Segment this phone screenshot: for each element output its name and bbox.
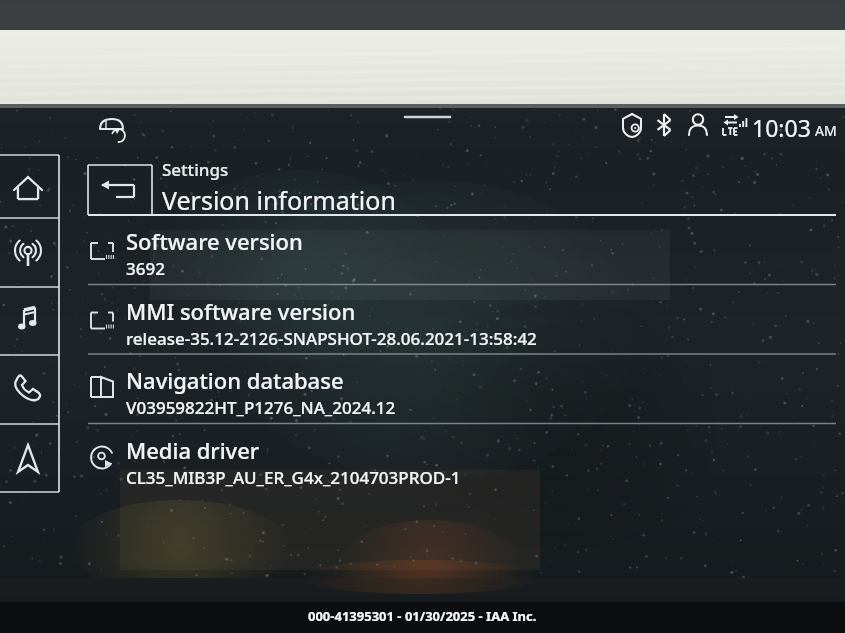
button[interactable]: Back to Settings	[88, 155, 836, 215]
staticText: AM	[815, 121, 837, 140]
button[interactable]: Navigation database	[88, 354, 836, 424]
staticText: Settings	[162, 158, 229, 181]
staticText: V03959822HT_P1276_NA_2024.12	[126, 396, 396, 419]
button[interactable]: Media driver	[88, 424, 836, 494]
staticText: Version information	[162, 183, 396, 217]
staticText: Navigation database	[126, 365, 344, 395]
staticText: release-35.12-2126-SNAPSHOT-28.06.2021-1…	[126, 327, 537, 350]
staticText: 10:03	[752, 112, 811, 143]
staticText: CL35_MIB3P_AU_ER_G4x_2104703PROD-1	[126, 466, 461, 489]
staticText: MMI software version	[126, 296, 356, 326]
button[interactable]: MMI software version	[88, 285, 836, 355]
staticText: Media driver	[126, 435, 260, 465]
staticText: 3692	[126, 257, 165, 280]
button[interactable]: Software version	[88, 215, 836, 285]
staticText: 000-41395301 - 01/30/2025 - IAA Inc.	[308, 607, 537, 625]
staticText: Software version	[126, 226, 303, 256]
